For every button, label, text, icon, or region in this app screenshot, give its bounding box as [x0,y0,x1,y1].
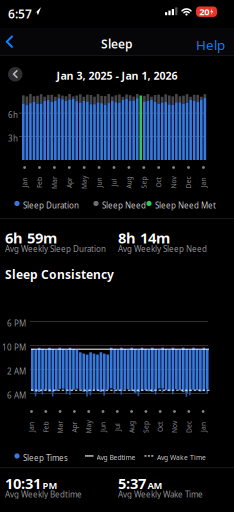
staticText: 3h [8,133,18,144]
staticText: Aug [123,178,135,187]
staticText: Jan [198,178,208,187]
staticText: Dec [182,178,194,187]
staticText: 6h 59m [5,228,57,247]
staticText: Nov [168,423,180,431]
staticText: Feb [34,178,45,187]
staticText: Sleep Duration [23,200,79,211]
staticText: 20 [199,5,209,18]
staticText: Apr [69,423,80,431]
staticText: Oct [155,423,165,431]
button[interactable] [6,36,14,47]
staticText: Aug [126,423,138,431]
staticText: Sleep Consistency [5,266,114,282]
staticText: Feb [40,423,51,431]
staticText: Avg Bedtime [96,453,135,462]
staticText: 10:31 [5,473,41,493]
staticText: Jan [198,423,208,431]
staticText: 2 AM [7,366,26,377]
staticText: Sleep [101,36,133,52]
staticText: Avg Weekly Sleep Duration [5,243,106,254]
staticText: PM [42,479,57,491]
staticText: Mar [48,178,61,187]
staticText: Sleep Need Met [155,200,216,211]
staticText: 5:37 [118,473,146,493]
staticText: 6:57 [8,6,32,22]
staticText: Jul [113,423,121,431]
staticText: 6 AM [7,390,26,401]
staticText: Oct [154,178,164,187]
staticText: Help [196,36,225,54]
staticText: May [82,423,95,431]
staticText: Avg Weekly Sleep Need [118,243,207,254]
staticText: Jan [26,423,36,431]
button[interactable]: Help [196,36,225,54]
staticText: Sleep Times [23,453,68,463]
staticText: Avg Wake Time [157,453,206,462]
staticText: Avg Weekly Wake Time [118,489,203,500]
staticText: Avg Weekly Bedtime [5,489,82,500]
staticText: Sep [138,178,150,187]
staticText: Jan [20,178,30,187]
button[interactable] [8,67,22,81]
staticText: Jun [98,423,108,431]
staticText: 10 PM [2,342,26,353]
staticText: Dec [183,423,195,431]
staticText: Mar [54,423,67,431]
staticText: 8h 14m [118,228,170,247]
staticText: Jun [94,178,104,187]
staticText: May [78,178,91,187]
staticText: 6h [8,109,18,120]
staticText: AM [147,479,162,491]
staticText: 6 PM [7,318,26,329]
staticText: Sleep Need [102,200,146,211]
staticText: Apr [64,178,75,187]
staticText: Jan 3, 2025 - Jan 1, 2026 [56,68,177,83]
staticText: Jul [110,178,118,187]
staticText: Nov [168,178,180,187]
staticText: Sep [140,423,152,431]
